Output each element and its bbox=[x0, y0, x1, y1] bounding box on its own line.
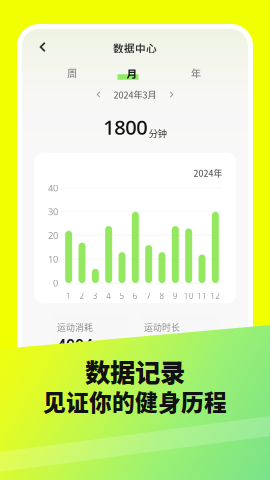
staticText: 7 bbox=[146, 291, 151, 301]
staticText: 2 bbox=[79, 291, 84, 301]
staticText: 1 bbox=[66, 291, 71, 301]
button[interactable]: Previous month bbox=[91, 87, 105, 101]
staticText: 40 bbox=[48, 182, 58, 194]
staticText: 周 bbox=[67, 66, 77, 80]
staticText: 20 bbox=[48, 229, 58, 242]
staticText: 运动时长 bbox=[144, 320, 180, 333]
staticText: 数据中心 bbox=[113, 40, 157, 55]
staticText: 0 bbox=[53, 277, 58, 289]
staticText: 11 bbox=[197, 291, 207, 301]
button[interactable]: Next month bbox=[164, 87, 178, 101]
staticText: 见证你的健身历程 bbox=[43, 385, 227, 417]
staticText: 10 bbox=[184, 291, 194, 301]
staticText: 3 bbox=[93, 291, 98, 301]
staticText: 30 bbox=[48, 206, 58, 218]
staticText: 分钟 bbox=[149, 126, 167, 140]
staticText: 年 bbox=[191, 66, 201, 80]
staticText: 6 bbox=[133, 291, 138, 301]
button[interactable]: 运动时长 bbox=[138, 314, 219, 356]
button[interactable]: 年 bbox=[174, 63, 218, 83]
staticText: 8 bbox=[159, 291, 164, 301]
staticText: 4004 bbox=[57, 334, 93, 355]
button[interactable]: 运动消耗 bbox=[51, 314, 132, 356]
button[interactable]: 月 bbox=[110, 63, 154, 83]
staticText: 1800 bbox=[144, 334, 180, 355]
staticText: 月 bbox=[126, 65, 137, 81]
staticText: 5 bbox=[119, 291, 124, 301]
staticText: 数据记录 bbox=[85, 353, 185, 389]
staticText: 12 bbox=[210, 291, 220, 301]
staticText: 9 bbox=[173, 291, 178, 301]
staticText: 运动消耗 bbox=[57, 320, 93, 333]
staticText: 2024年 bbox=[193, 167, 222, 179]
staticText: 10 bbox=[48, 253, 58, 265]
button[interactable]: 周 bbox=[50, 63, 94, 83]
staticText: 2024年3月 bbox=[113, 88, 156, 101]
button[interactable]: Back bbox=[32, 36, 54, 58]
staticText: 1800 bbox=[103, 114, 147, 140]
staticText: 4 bbox=[106, 291, 111, 301]
